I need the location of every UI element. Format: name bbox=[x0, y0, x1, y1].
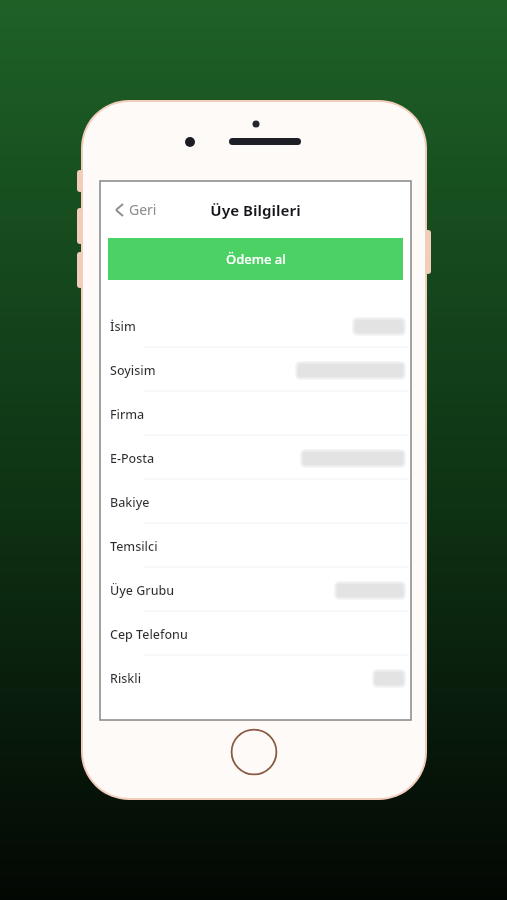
button[interactable]: Bakiye bbox=[100, 480, 411, 524]
staticText: E-Posta bbox=[110, 450, 155, 467]
staticText: Üye Grubu bbox=[110, 582, 175, 599]
staticText: Firma bbox=[110, 406, 145, 423]
button[interactable]: Cep Telefonu bbox=[100, 612, 411, 656]
staticText: Bakiye bbox=[110, 494, 150, 511]
staticText: İsim bbox=[110, 318, 136, 335]
button[interactable]: Ödeme al bbox=[108, 238, 403, 280]
staticText: Riskli bbox=[110, 670, 142, 687]
button[interactable]: Temsilci bbox=[100, 524, 411, 568]
button[interactable]: Firma bbox=[100, 392, 411, 436]
button[interactable]: Soyisim bbox=[100, 348, 411, 392]
staticText: Soyisim bbox=[110, 362, 156, 379]
button[interactable]: Geri bbox=[110, 194, 161, 225]
button[interactable]: Riskli bbox=[100, 656, 411, 700]
staticText: Geri bbox=[129, 200, 157, 219]
button[interactable]: İsim bbox=[100, 304, 411, 348]
button[interactable]: Üye Grubu bbox=[100, 568, 411, 612]
staticText: Cep Telefonu bbox=[110, 626, 188, 643]
button[interactable]: Home bbox=[230, 728, 278, 776]
button[interactable]: E-Posta bbox=[100, 436, 411, 480]
staticText: Temsilci bbox=[110, 538, 158, 555]
staticText: Üye Bilgileri bbox=[210, 200, 301, 220]
staticText: Ödeme al bbox=[226, 250, 286, 268]
